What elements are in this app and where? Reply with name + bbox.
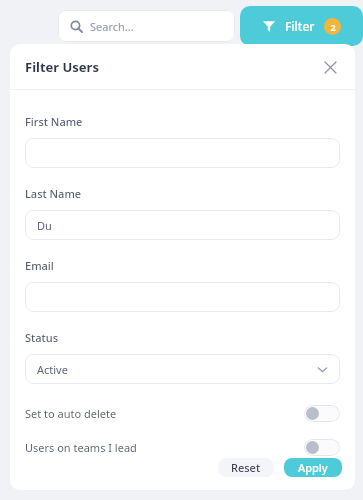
button[interactable]: Filter	[240, 6, 363, 46]
staticText: Email	[25, 258, 54, 273]
staticText: Reset	[231, 460, 261, 475]
button[interactable]: Active	[25, 354, 340, 384]
button[interactable]: Users on teams I lead	[10, 436, 355, 458]
button[interactable]: Set to auto delete	[10, 402, 355, 424]
staticText: First Name	[25, 114, 83, 129]
staticText: Du	[37, 218, 52, 233]
button[interactable]	[25, 282, 340, 312]
staticText: Status	[25, 330, 59, 345]
staticText: Search...	[90, 19, 134, 34]
button[interactable]	[25, 138, 340, 168]
button[interactable]: Reset	[218, 458, 274, 477]
button[interactable]: Apply	[284, 458, 342, 477]
button[interactable]: Close	[319, 56, 341, 78]
staticText: Set to auto delete	[25, 406, 117, 421]
button[interactable]: Du	[25, 210, 340, 240]
staticText: 2	[330, 21, 336, 33]
staticText: Users on teams I lead	[25, 440, 137, 455]
staticText: Filter	[285, 18, 315, 34]
staticText: Last Name	[25, 186, 82, 201]
staticText: Apply	[298, 460, 328, 475]
button[interactable]: Search...	[58, 10, 235, 42]
staticText: Active	[37, 362, 68, 377]
staticText: Filter Users	[25, 58, 99, 76]
